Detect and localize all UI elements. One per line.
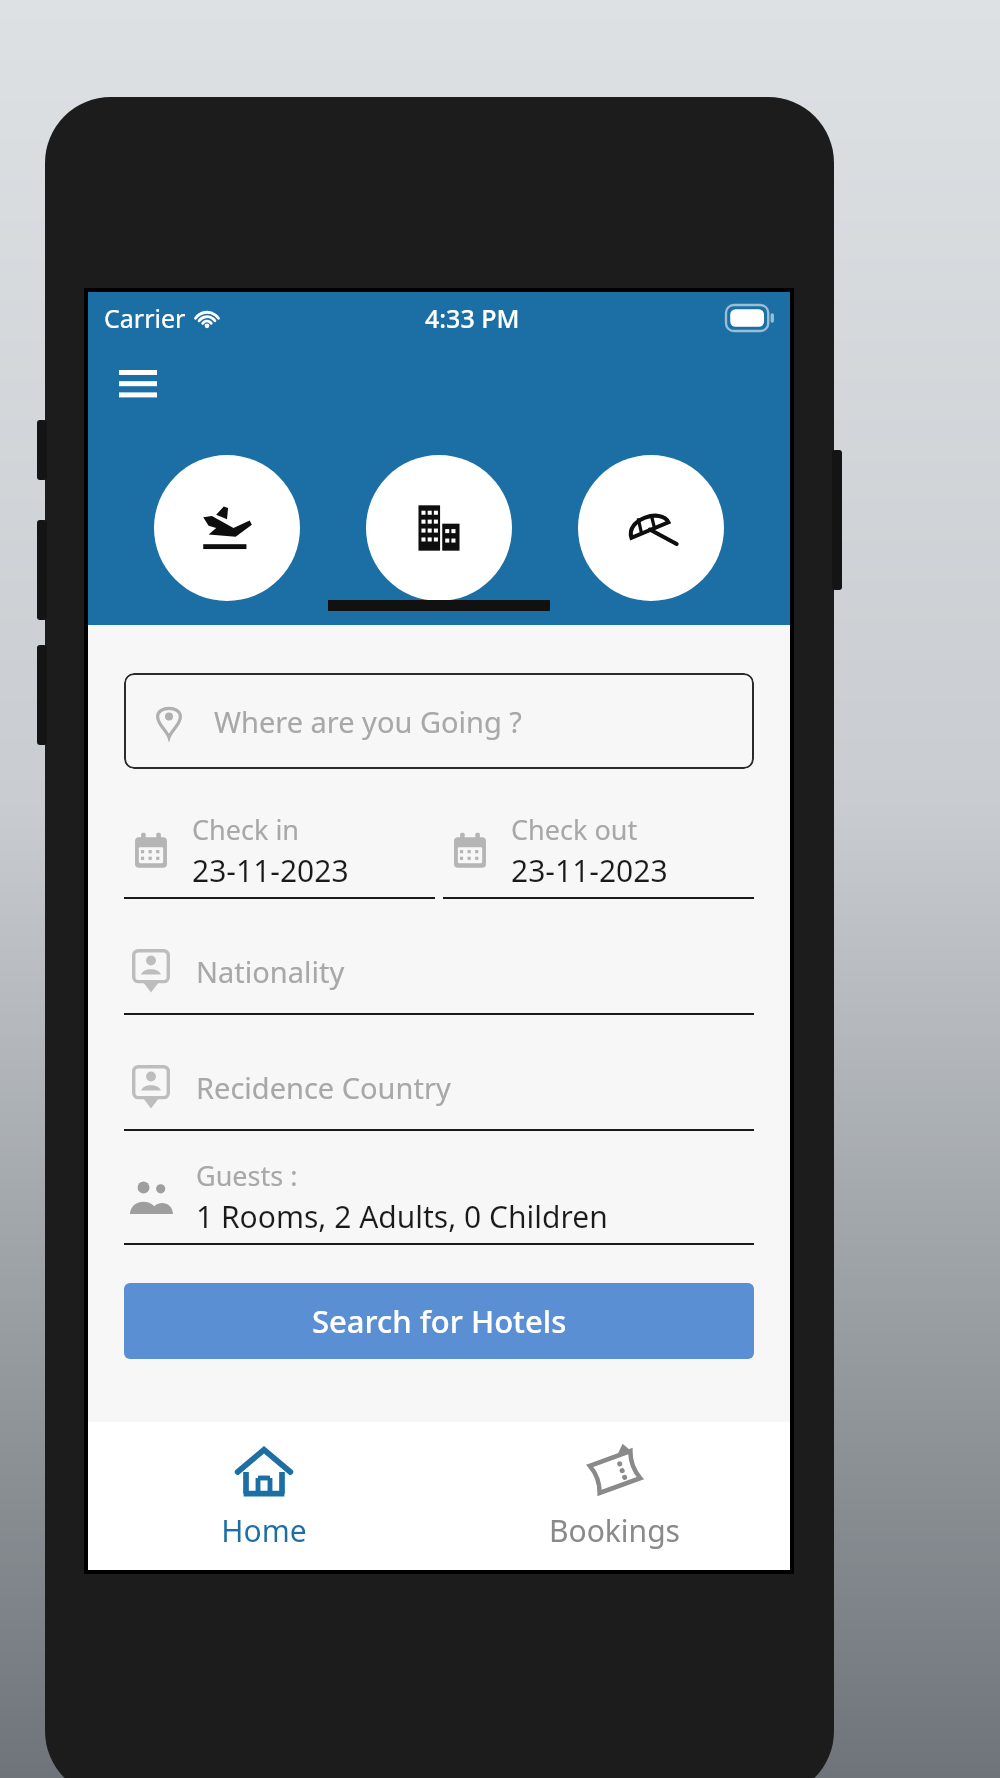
staticText: Home <box>221 1510 307 1551</box>
button[interactable]: Holidays <box>578 455 724 601</box>
staticText: 23-11-2023 <box>192 850 349 891</box>
staticText: Nationality <box>196 952 345 991</box>
staticText: Check out <box>511 811 638 848</box>
staticText: Carrier <box>104 301 186 335</box>
button[interactable]: Nationality <box>124 933 754 1015</box>
staticText: Check in <box>192 811 300 848</box>
button[interactable]: Guests : <box>124 1157 754 1245</box>
button[interactable]: Search for Hotels <box>124 1283 754 1359</box>
staticText: Where are you Going ? <box>214 702 522 741</box>
button[interactable]: Flights <box>154 455 300 601</box>
staticText: 1 Rooms, 2 Adults, 0 Children <box>196 1196 608 1237</box>
button[interactable]: Recidence Country <box>124 1049 754 1131</box>
button[interactable]: Bookings <box>439 1422 790 1570</box>
staticText: Guests : <box>196 1157 298 1194</box>
staticText: Bookings <box>549 1510 680 1551</box>
button[interactable]: Check in <box>124 811 435 899</box>
button[interactable]: Hotels <box>366 455 512 601</box>
button[interactable]: Where are you Going ? <box>124 673 754 769</box>
button[interactable]: Home <box>88 1422 439 1570</box>
button[interactable]: Check out <box>443 811 754 899</box>
staticText: 23-11-2023 <box>511 850 668 891</box>
staticText: 4:33 PM <box>425 301 520 335</box>
staticText: Search for Hotels <box>312 1300 567 1342</box>
staticText: Recidence Country <box>196 1068 451 1107</box>
button[interactable]: Menu <box>110 356 166 412</box>
